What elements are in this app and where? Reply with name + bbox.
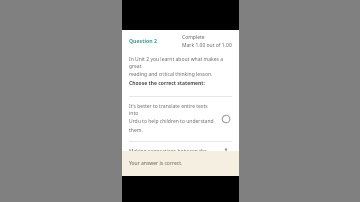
staticText: them.	[129, 127, 143, 134]
button[interactable]: It's better to translate entire texts in…	[129, 103, 232, 134]
button[interactable]: It's better to translate entire texts in…	[220, 113, 232, 125]
staticText: Making connections between the texts	[129, 148, 216, 151]
staticText: Mark 1.00 out of 1.00	[182, 42, 232, 49]
staticText: In Unit 2 you learnt about what makes a …	[129, 56, 232, 69]
button[interactable]: Your answer is correct.	[122, 151, 239, 176]
staticText: Your answer is correct.	[129, 160, 183, 167]
staticText: reading and critical thinking lesson.	[129, 71, 213, 78]
button[interactable]: Making connections between the texts lea…	[220, 148, 232, 151]
staticText: Complete	[182, 34, 205, 41]
button[interactable]: Making connections between the texts	[129, 148, 232, 151]
button[interactable]: Question 2	[129, 34, 157, 44]
staticText: Urdu to help children to understand	[129, 118, 214, 125]
staticText: Choose the correct statement:	[129, 80, 205, 87]
staticText: It's better to translate entire texts in…	[129, 103, 216, 116]
